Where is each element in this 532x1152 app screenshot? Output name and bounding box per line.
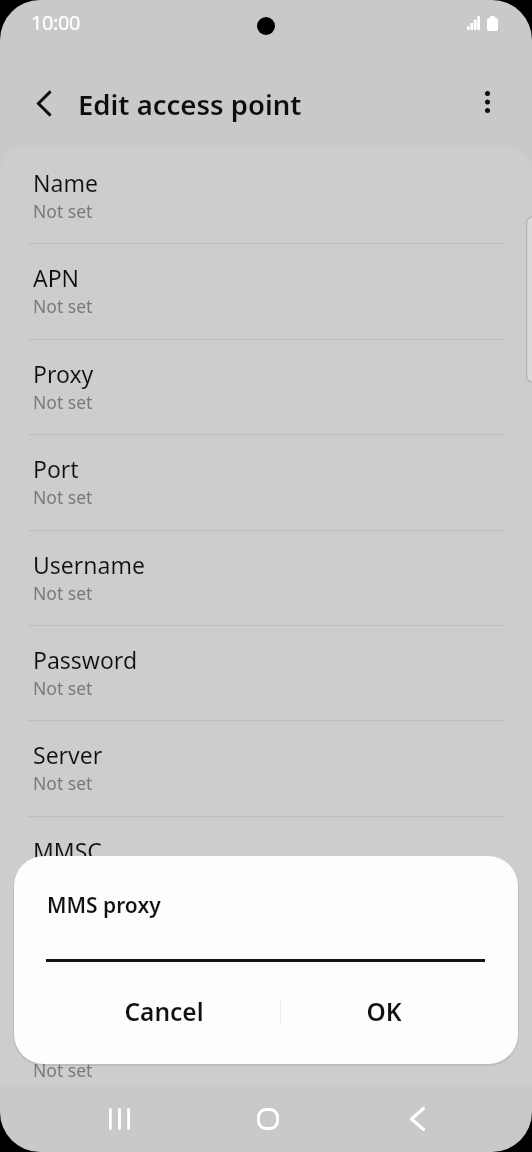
button[interactable]: Server — [0, 718, 532, 813]
button[interactable]: OK — [280, 975, 487, 1047]
button[interactable]: Password — [0, 623, 532, 718]
staticText: Cancel — [124, 995, 204, 1028]
button[interactable]: Home — [240, 1091, 296, 1147]
button[interactable]: Back — [389, 1091, 445, 1147]
staticText: Name — [33, 167, 98, 198]
button[interactable]: MMSC — [0, 814, 532, 909]
button[interactable]: MMS port — [0, 1005, 532, 1086]
staticText: Password — [33, 644, 138, 675]
button[interactable]: Username — [0, 528, 532, 623]
staticText: 10:00 — [31, 9, 81, 36]
staticText: MMS proxy — [33, 930, 154, 961]
button[interactable]: Cancel — [47, 975, 280, 1047]
button[interactable]: APN — [0, 241, 532, 336]
staticText: Not set — [33, 1058, 93, 1082]
staticText: MMS proxy — [47, 891, 161, 920]
staticText: Username — [33, 549, 145, 580]
button[interactable]: MMS proxy — [0, 909, 532, 1004]
button[interactable]: More options — [465, 80, 509, 124]
staticText: APN — [33, 262, 80, 293]
staticText: Port — [33, 453, 79, 484]
staticText: Not set — [33, 676, 93, 700]
button[interactable]: Recent apps — [91, 1091, 147, 1147]
staticText: Not set — [33, 581, 93, 605]
button[interactable]: Port — [0, 432, 532, 527]
button[interactable]: Navigate up — [22, 81, 66, 125]
staticText: Proxy — [33, 358, 94, 389]
staticText: Server — [33, 739, 103, 770]
button[interactable]: Proxy — [0, 337, 532, 432]
staticText: Edit access point — [78, 86, 302, 123]
staticText: Not set — [33, 390, 93, 414]
staticText: Not set — [33, 294, 93, 318]
staticText: Not set — [33, 485, 93, 509]
staticText: Not set — [33, 771, 93, 795]
staticText: MMSC — [33, 835, 102, 866]
staticText: OK — [366, 995, 402, 1028]
staticText: Not set — [33, 199, 93, 223]
button[interactable]: Name — [0, 146, 532, 241]
